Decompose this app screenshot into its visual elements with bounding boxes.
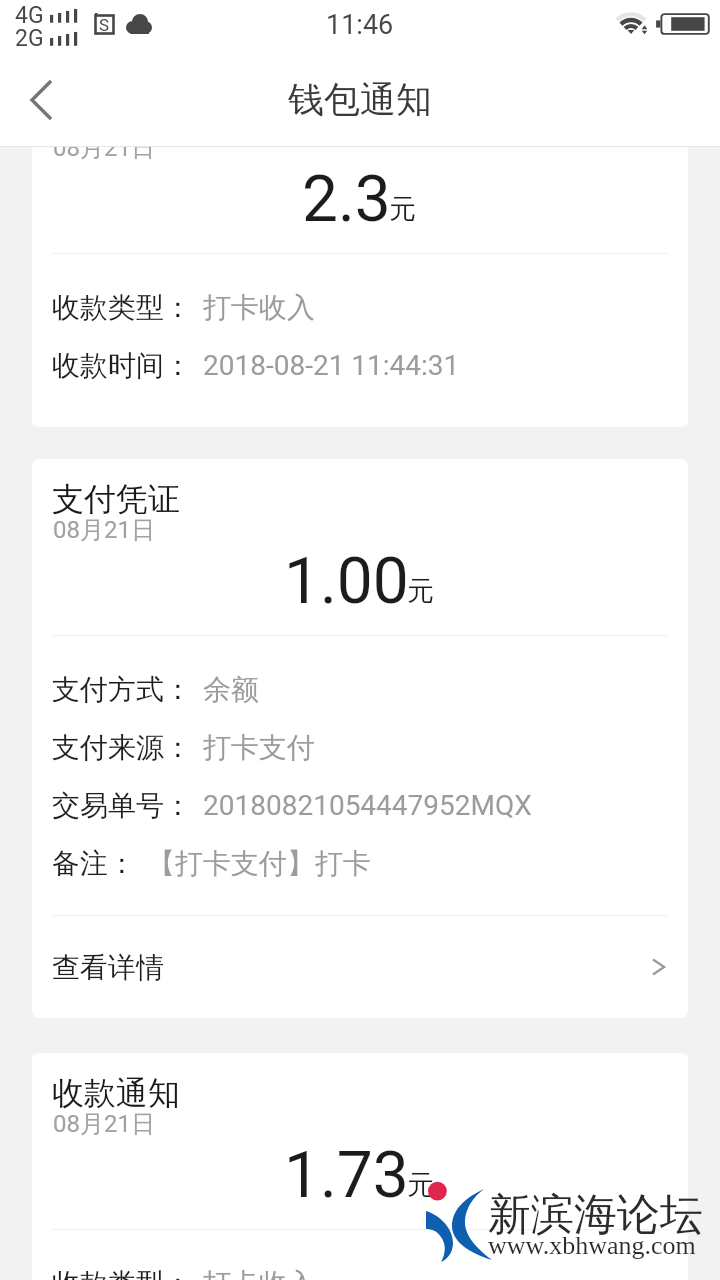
button[interactable]: 支付凭证	[32, 459, 688, 1018]
staticText: 查看详情	[52, 950, 164, 985]
staticText: 20180821054447952MQX	[203, 789, 532, 822]
staticText: 元	[407, 1168, 434, 1202]
staticText: 收款时间：	[52, 348, 192, 383]
staticText: 1.73	[284, 1138, 409, 1213]
button[interactable]: Back	[4, 52, 80, 147]
staticText: 新滨海论坛	[488, 1188, 703, 1242]
staticText: 2.3	[302, 162, 391, 237]
staticText: 08月21日	[53, 147, 155, 163]
staticText: 08月21日	[53, 1109, 155, 1139]
staticText: 备注：	[52, 846, 136, 881]
staticText: 打卡收入	[203, 1266, 315, 1280]
staticText: 2018-08-21 11:44:31	[203, 349, 460, 382]
staticText: 交易单号：	[52, 788, 192, 823]
staticText: 收款类型：	[52, 290, 192, 325]
staticText: 支付方式：	[52, 672, 192, 707]
staticText: 【打卡支付】打卡	[147, 846, 371, 881]
staticText: 打卡收入	[203, 290, 315, 325]
staticText: 支付来源：	[52, 730, 192, 765]
staticText: 支付凭证	[52, 479, 180, 519]
staticText: www.xbhwang.com	[488, 1231, 696, 1260]
staticText: 收款类型：	[52, 1266, 192, 1280]
staticText: 1.00	[284, 544, 409, 619]
staticText: 元	[407, 574, 434, 608]
staticText: 4G	[15, 2, 44, 29]
staticText: 打卡支付	[203, 730, 315, 765]
staticText: 元	[389, 192, 416, 226]
staticText: 余额	[203, 672, 259, 707]
staticText: 钱包通知	[288, 77, 432, 122]
staticText: 收款通知	[52, 1073, 180, 1113]
staticText: 08月21日	[53, 515, 155, 545]
button[interactable]: 收款通知	[32, 1053, 688, 1280]
staticText: S	[99, 15, 110, 35]
button[interactable]: 收款通知	[32, 147, 688, 427]
staticText: 2G	[15, 25, 44, 52]
staticText: 11:46	[326, 9, 394, 41]
button[interactable]: 查看详情	[32, 936, 688, 998]
